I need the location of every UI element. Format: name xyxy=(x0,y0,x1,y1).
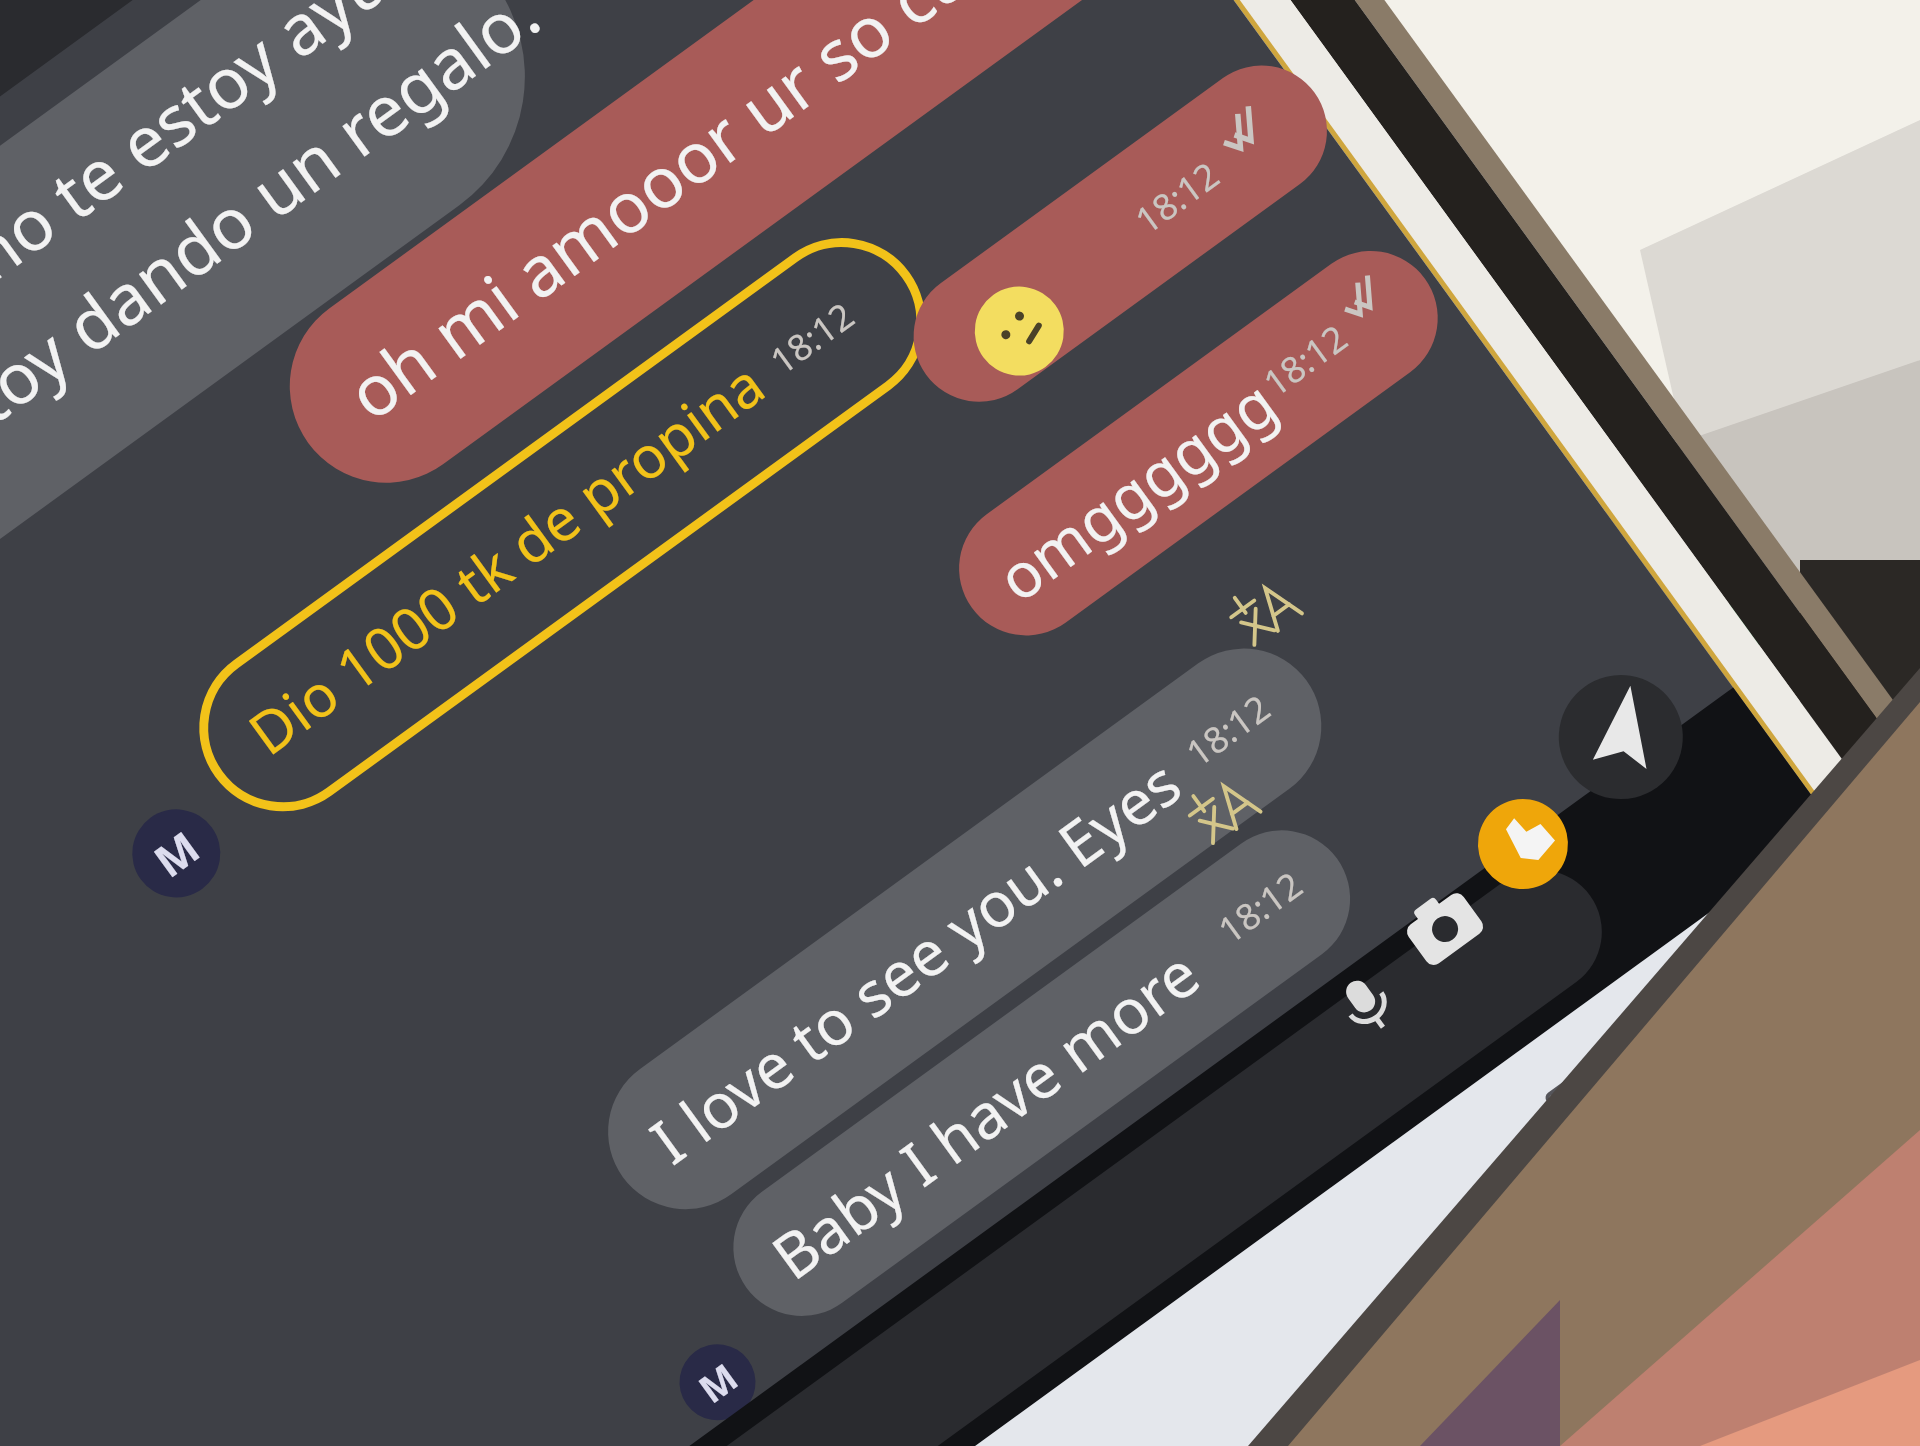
button[interactable]: oh mi amooor ur so cute 18:12 xyxy=(251,364,1441,557)
button[interactable]: Send xyxy=(1534,723,1658,847)
button[interactable]: Voice message xyxy=(1325,998,1385,1058)
button[interactable]: Dio 1000 tk de propina 18:12 xyxy=(172,710,1021,868)
button[interactable]: Translate message xyxy=(1220,605,1282,667)
button[interactable]: Emoji message 18:12 xyxy=(887,321,1367,452)
button[interactable]: Stickers xyxy=(1460,834,1550,924)
button[interactable]: omgggggg 18:12 xyxy=(932,553,1492,687)
button[interactable]: Baby I have more 18:12 xyxy=(706,1232,1436,1369)
button[interactable]: Translate message xyxy=(1179,803,1241,865)
button[interactable]: I love to see you. Eyes 18:12 xyxy=(577,1114,1422,1269)
button[interactable]: Camera xyxy=(1398,922,1466,982)
